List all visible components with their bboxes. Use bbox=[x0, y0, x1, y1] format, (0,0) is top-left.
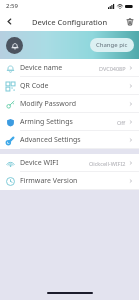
staticText: Device WIFI bbox=[20, 158, 59, 168]
button[interactable]: Device picture bbox=[6, 37, 23, 54]
staticText: Oickcell-WIFI2 bbox=[89, 160, 126, 167]
button[interactable]: Device WIFI bbox=[0, 154, 139, 172]
staticText: Change pic bbox=[96, 41, 128, 49]
staticText: Firmware Version bbox=[20, 176, 78, 186]
staticText: Device Configuration bbox=[32, 17, 108, 27]
staticText: QR Code bbox=[20, 81, 49, 91]
button[interactable]: Firmware Version bbox=[0, 172, 139, 190]
staticText: Device name bbox=[20, 63, 63, 73]
button[interactable]: Device name bbox=[0, 59, 139, 77]
button[interactable]: QR Code bbox=[0, 77, 139, 95]
staticText: DVC0408P bbox=[99, 65, 126, 72]
staticText: Arming Settings bbox=[20, 117, 73, 127]
button[interactable]: Delete bbox=[120, 12, 139, 31]
staticText: Off bbox=[117, 119, 126, 126]
button[interactable]: Change pic bbox=[90, 38, 134, 52]
button[interactable]: Modify Password bbox=[0, 95, 139, 113]
button[interactable]: Arming Settings bbox=[0, 113, 139, 131]
staticText: Modify Password bbox=[20, 99, 77, 109]
button[interactable]: Advanced Settings bbox=[0, 131, 139, 149]
staticText: 2:59 bbox=[6, 2, 18, 10]
button[interactable]: Back bbox=[0, 12, 19, 31]
staticText: Advanced Settings bbox=[20, 135, 81, 145]
